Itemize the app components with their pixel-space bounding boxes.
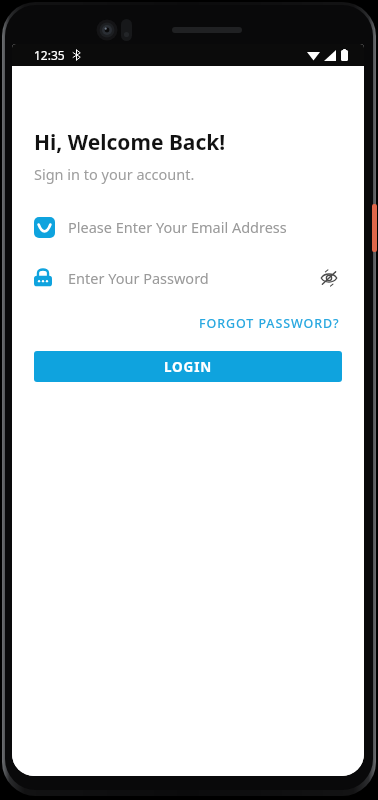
button[interactable]: Please Enter Your Email Address — [34, 210, 342, 244]
staticText: Enter Your Password — [68, 268, 209, 288]
staticText: FORGOT PASSWORD? — [199, 315, 340, 332]
staticText: Please Enter Your Email Address — [68, 217, 287, 237]
button[interactable]: LOGIN — [34, 351, 342, 382]
staticText: LOGIN — [164, 358, 212, 376]
button[interactable]: Show password — [316, 265, 342, 291]
button[interactable]: Enter Your Password — [34, 261, 342, 295]
staticText: 12:35 — [34, 47, 65, 63]
button[interactable]: FORGOT PASSWORD? — [197, 310, 342, 337]
staticText: Hi, Welcome Back! — [34, 128, 226, 157]
staticText: Sign in to your account. — [34, 164, 195, 184]
